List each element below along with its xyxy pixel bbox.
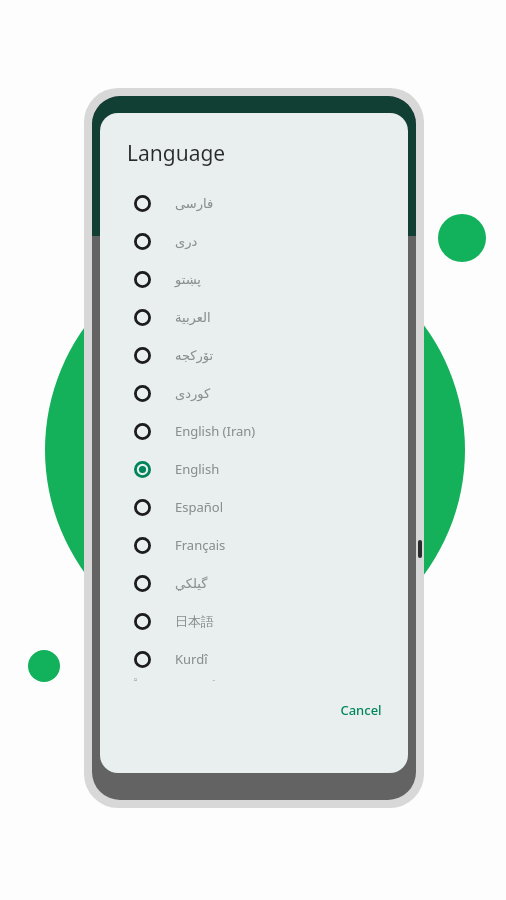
staticText: تۆرکجه [175, 348, 214, 363]
button[interactable]: العربية [100, 298, 408, 336]
button[interactable]: کوردیی [100, 678, 408, 681]
staticText: 日本語 [175, 613, 214, 629]
staticText: دری [175, 234, 198, 249]
staticText: پښتو [175, 272, 201, 287]
staticText: Cancel [340, 701, 382, 719]
other: Power button [418, 540, 422, 558]
staticText: Español [175, 498, 223, 516]
staticText: Language [127, 139, 226, 168]
staticText: Français [175, 536, 226, 554]
staticText: گیلکي [175, 576, 208, 591]
button[interactable]: گیلکي [100, 564, 408, 602]
button[interactable]: English [100, 450, 408, 488]
button[interactable]: Español [100, 488, 408, 526]
staticText: کوردی [175, 386, 211, 401]
button[interactable]: Kurdî [100, 640, 408, 678]
staticText: English [175, 460, 220, 478]
button[interactable]: Cancel [330, 693, 392, 727]
button[interactable]: دری [100, 222, 408, 260]
button[interactable]: Français [100, 526, 408, 564]
staticText: Kurdî [175, 650, 208, 668]
button[interactable]: کوردی [100, 374, 408, 412]
button[interactable]: 日本語 [100, 602, 408, 640]
button[interactable]: پښتو [100, 260, 408, 298]
staticText: العربية [175, 310, 211, 325]
staticText: فارسی [175, 196, 214, 211]
staticText: کوردیی [175, 678, 215, 681]
button[interactable]: تۆرکجه [100, 336, 408, 374]
button[interactable]: فارسی [100, 184, 408, 222]
staticText: English (Iran) [175, 422, 256, 440]
button[interactable]: English (Iran) [100, 412, 408, 450]
